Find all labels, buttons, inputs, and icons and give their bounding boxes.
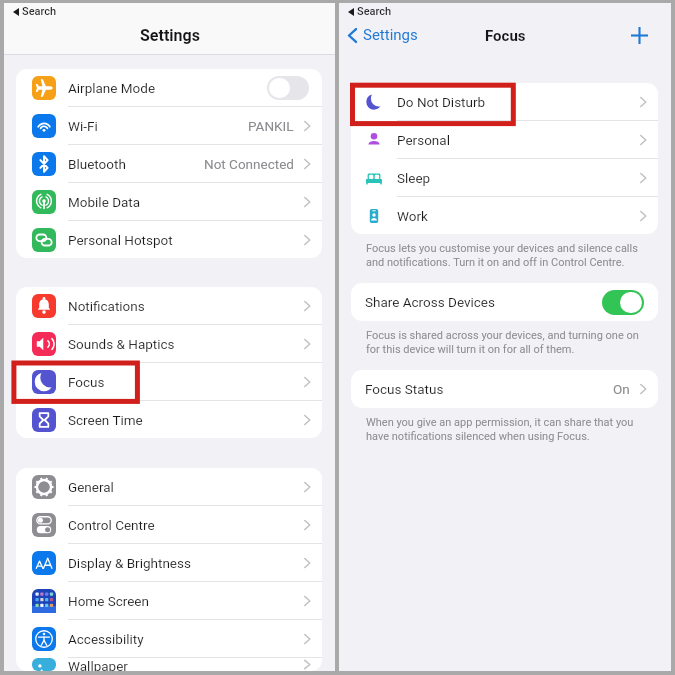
staticText: Settings — [363, 26, 418, 44]
staticText: PANKIL — [248, 118, 294, 134]
staticText: Wallpaper — [68, 658, 128, 671]
staticText: Work — [397, 208, 428, 224]
button[interactable]: Airplane Mode — [16, 69, 322, 106]
staticText: Notifications — [68, 298, 145, 314]
staticText: On — [613, 381, 630, 397]
staticText: Wi-Fi — [68, 118, 98, 134]
button[interactable]: Focus Status — [351, 370, 658, 408]
button[interactable]: Airplane Mode off — [267, 76, 309, 100]
staticText: Home Screen — [68, 593, 149, 609]
button[interactable]: Sounds & Haptics — [16, 325, 322, 362]
button[interactable]: Search — [13, 5, 57, 18]
button[interactable]: Control Centre — [16, 506, 322, 543]
staticText: Focus — [68, 374, 105, 390]
button[interactable]: Bluetooth — [16, 145, 322, 182]
staticText: Control Centre — [68, 517, 155, 533]
staticText: Display & Brightness — [68, 555, 191, 571]
button[interactable]: Search — [348, 5, 392, 18]
staticText: Focus lets you customise your devices an… — [366, 242, 638, 269]
staticText: Search — [22, 5, 57, 18]
staticText: Not Connected — [204, 156, 294, 172]
staticText: Screen Time — [68, 412, 143, 428]
staticText: Do Not Disturb — [397, 94, 486, 110]
button[interactable]: Share Across Devices on — [602, 290, 644, 315]
button[interactable]: Settings — [345, 26, 420, 44]
staticText: Personal Hotspot — [68, 232, 173, 248]
button[interactable]: Screen Time — [16, 401, 322, 438]
button[interactable]: Wi-Fi — [16, 107, 322, 144]
staticText: Focus — [485, 27, 526, 45]
staticText: General — [68, 479, 114, 495]
button[interactable]: Add Focus — [628, 24, 650, 46]
staticText: Share Across Devices — [365, 294, 495, 310]
staticText: Focus Status — [365, 381, 444, 397]
staticText: Search — [357, 5, 392, 18]
staticText: Accessibility — [68, 631, 144, 647]
button[interactable]: Focus — [16, 363, 322, 400]
button[interactable]: Share Across Devices — [351, 283, 658, 321]
button[interactable]: Sleep — [351, 159, 658, 196]
button[interactable]: Home Screen — [16, 582, 322, 619]
staticText: Airplane Mode — [68, 80, 156, 96]
button[interactable]: Notifications — [16, 287, 322, 324]
staticText: When you give an app permission, it can … — [366, 416, 634, 443]
button[interactable]: Wallpaper — [16, 658, 322, 671]
button[interactable]: Personal — [351, 121, 658, 158]
button[interactable]: Personal Hotspot — [16, 221, 322, 258]
button[interactable]: General — [16, 468, 322, 505]
staticText: Sleep — [397, 170, 431, 186]
button[interactable]: Do Not Disturb — [351, 83, 658, 120]
button[interactable]: Mobile Data — [16, 183, 322, 220]
button[interactable]: Display & Brightness — [16, 544, 322, 581]
staticText: Personal — [397, 132, 450, 148]
staticText: Sounds & Haptics — [68, 336, 175, 352]
staticText: Focus is shared across your devices, and… — [366, 329, 639, 356]
button[interactable]: Accessibility — [16, 620, 322, 657]
staticText: Settings — [140, 26, 200, 45]
button[interactable]: Work — [351, 197, 658, 234]
staticText: Mobile Data — [68, 194, 141, 210]
staticText: Bluetooth — [68, 156, 126, 172]
